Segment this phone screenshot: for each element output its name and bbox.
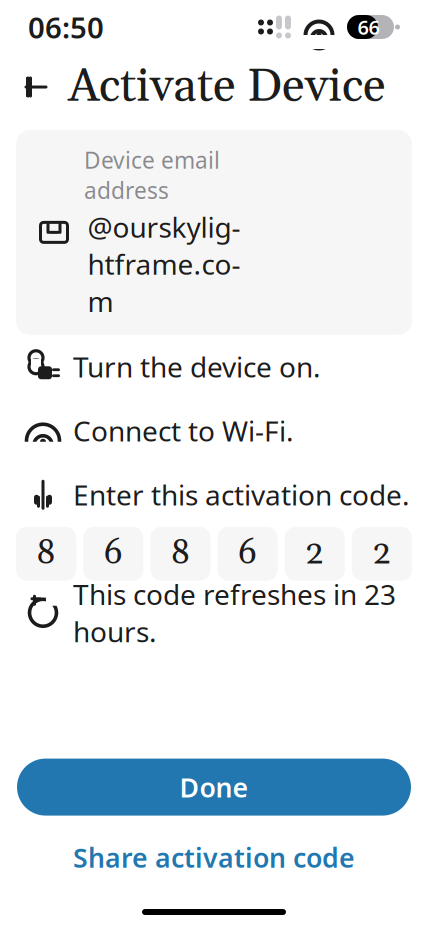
staticText: 06:50 xyxy=(28,7,104,46)
button[interactable]: Done xyxy=(17,759,411,816)
staticText: 6 xyxy=(104,533,123,575)
staticText: Connect to Wi-Fi. xyxy=(73,412,294,449)
staticText: 8 xyxy=(36,533,56,575)
staticText: 6 xyxy=(238,533,257,575)
staticText: Activate Device xyxy=(68,57,386,117)
staticText: 66 xyxy=(357,14,379,40)
staticText: This code refreshes in 23 hours. xyxy=(73,576,396,650)
staticText: Turn the device on. xyxy=(73,348,321,385)
button[interactable]: Share activation code xyxy=(49,830,379,885)
staticText: @ourskylightframe.com xyxy=(87,208,240,320)
staticText: Enter this activation code. xyxy=(73,476,410,513)
staticText: Share activation code xyxy=(73,840,355,875)
staticText: Device email address xyxy=(84,145,220,205)
staticText: 8 xyxy=(170,533,190,575)
staticText: 2 xyxy=(305,533,324,575)
button[interactable]: Back xyxy=(12,65,56,109)
staticText: 2 xyxy=(372,533,391,575)
staticText: Done xyxy=(179,769,248,805)
